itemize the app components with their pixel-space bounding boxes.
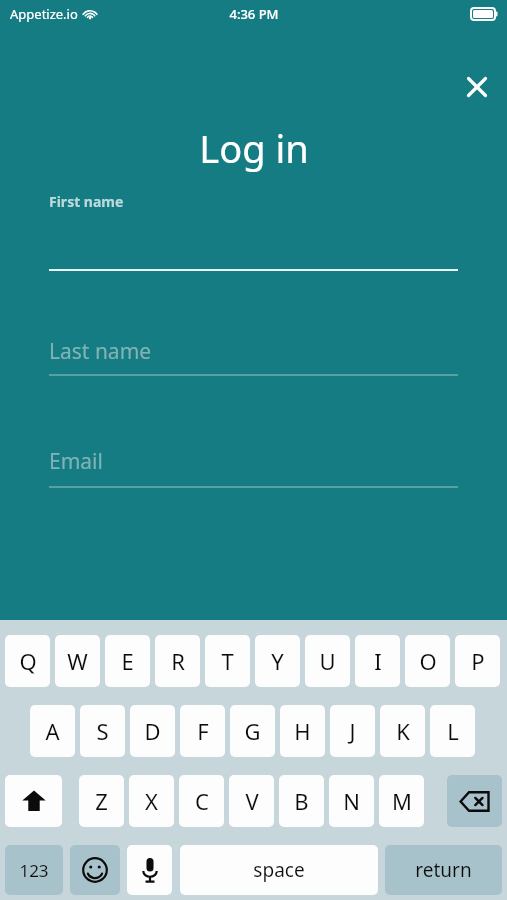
button[interactable]: I [355, 635, 400, 687]
button[interactable]: P [455, 635, 500, 687]
staticText: K [396, 716, 410, 746]
button[interactable]: C [179, 775, 224, 827]
staticText: W [67, 646, 88, 676]
staticText: Appetize.io [10, 5, 78, 23]
staticText: B [294, 786, 309, 816]
staticText: E [121, 646, 134, 676]
staticText: D [144, 716, 161, 746]
button[interactable]: L [430, 705, 475, 757]
staticText: Z [95, 786, 108, 816]
staticText: space [253, 857, 305, 883]
button[interactable]: W [55, 635, 100, 687]
button[interactable]: Backspace [447, 775, 502, 827]
button[interactable]: A [30, 705, 75, 757]
button[interactable]: Shift [5, 775, 62, 827]
button[interactable]: Close [455, 65, 499, 109]
button[interactable]: 123 [5, 845, 63, 895]
staticText: Last name [49, 337, 152, 366]
staticText: A [45, 716, 60, 746]
staticText: T [221, 646, 234, 676]
staticText: O [419, 646, 437, 676]
staticText: F [197, 716, 209, 746]
staticText: P [471, 646, 485, 676]
staticText: U [319, 646, 336, 676]
staticText: X [145, 786, 158, 816]
button[interactable]: Emoji [70, 845, 120, 895]
button[interactable]: B [279, 775, 324, 827]
button[interactable]: Y [255, 635, 300, 687]
button[interactable]: S [80, 705, 125, 757]
staticText: M [392, 786, 412, 816]
button[interactable]: G [230, 705, 275, 757]
button[interactable]: D [130, 705, 175, 757]
staticText: G [244, 716, 261, 746]
button[interactable]: X [129, 775, 174, 827]
staticText: Q [19, 646, 37, 676]
staticText: 4:36 PM [229, 5, 279, 23]
button[interactable]: R [155, 635, 200, 687]
button[interactable]: Voice input [127, 845, 172, 895]
staticText: S [96, 716, 109, 746]
staticText: R [171, 646, 185, 676]
button[interactable]: T [205, 635, 250, 687]
button[interactable]: N [329, 775, 374, 827]
staticText: V [245, 786, 259, 816]
staticText: return [415, 857, 472, 883]
button[interactable]: return [385, 845, 502, 895]
button[interactable]: F [180, 705, 225, 757]
button[interactable]: Z [79, 775, 124, 827]
button[interactable]: space [180, 845, 378, 895]
staticText: I [374, 646, 382, 676]
button[interactable]: O [405, 635, 450, 687]
staticText: H [294, 716, 311, 746]
staticText: First name [49, 192, 124, 211]
button[interactable]: E [105, 635, 150, 687]
button[interactable]: H [280, 705, 325, 757]
button[interactable]: M [379, 775, 424, 827]
staticText: C [195, 786, 209, 816]
button[interactable]: V [229, 775, 274, 827]
button[interactable]: K [380, 705, 425, 757]
button[interactable]: J [330, 705, 375, 757]
staticText: 123 [19, 859, 49, 882]
staticText: Log in [199, 122, 309, 174]
button[interactable]: Q [5, 635, 50, 687]
button[interactable]: U [305, 635, 350, 687]
staticText: L [447, 716, 459, 746]
staticText: Email [49, 447, 103, 476]
staticText: J [349, 716, 356, 746]
staticText: Y [271, 646, 284, 676]
staticText: N [343, 786, 360, 816]
